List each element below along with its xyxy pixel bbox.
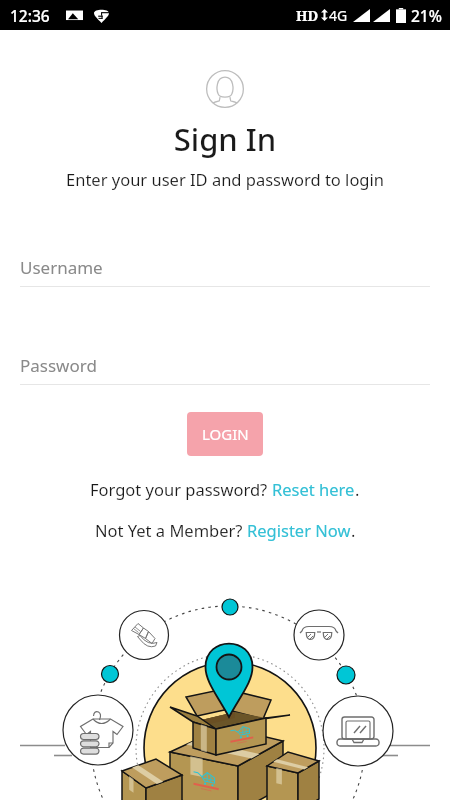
staticText: . <box>355 478 360 500</box>
button[interactable]: Register Now <box>247 519 351 541</box>
staticText: Username <box>20 256 103 279</box>
staticText: Sign In <box>0 118 450 160</box>
staticText: LOGIN <box>202 424 249 444</box>
staticText: Not Yet a Member? <box>95 519 247 541</box>
staticText: HD <box>296 6 319 25</box>
staticText: 12:36 <box>10 5 50 26</box>
staticText: Forgot your password? <box>90 478 272 500</box>
staticText: Enter your user ID and password to login <box>0 168 450 190</box>
staticText: 4G <box>329 6 348 25</box>
button[interactable]: LOGIN <box>187 412 263 456</box>
button[interactable]: Reset here <box>272 478 355 500</box>
staticText: . <box>351 519 356 541</box>
staticText: Password <box>20 354 97 377</box>
staticText: 21% <box>411 5 442 26</box>
